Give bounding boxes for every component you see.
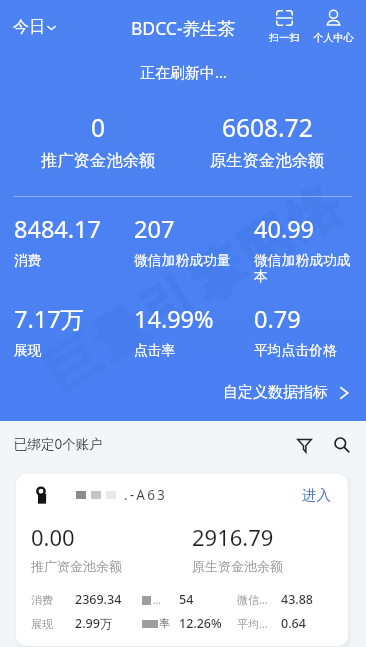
staticText: 推广资金池余额: [41, 150, 156, 171]
button[interactable]: 扫一扫: [265, 10, 304, 44]
button[interactable]: 搜索: [326, 429, 356, 459]
staticText: 展现: [31, 617, 53, 631]
staticText: 43.88: [281, 591, 314, 608]
staticText: 2369.34: [75, 591, 122, 608]
button[interactable]: 自定义数据指标: [223, 383, 352, 402]
staticText: 平均点击价格: [254, 342, 337, 359]
staticText: 2916.79: [192, 522, 274, 552]
staticText: 巨量引擎网络: [30, 170, 355, 408]
staticText: 原生资金池余额: [210, 150, 325, 171]
staticText: 6608.72: [222, 111, 313, 144]
staticText: 微信…: [237, 592, 268, 607]
staticText: 自定义数据指标: [223, 383, 328, 402]
staticText: 54: [179, 591, 194, 608]
staticText: 消费: [14, 252, 42, 269]
staticText: 12.26%: [179, 615, 222, 632]
staticText: 扫一扫: [269, 31, 300, 44]
staticText: 率: [159, 617, 170, 630]
button[interactable]: 个人中心: [309, 10, 358, 44]
button[interactable]: 进入: [302, 486, 348, 504]
staticText: 微信加粉成功量: [134, 252, 231, 269]
staticText: 0.79: [254, 303, 301, 335]
button[interactable]: 筛选: [289, 429, 319, 459]
staticText: .-A63: [124, 486, 168, 504]
staticText: 点击率: [134, 342, 176, 359]
staticText: BDCC-养生茶: [131, 16, 236, 40]
staticText: 40.99: [254, 213, 315, 245]
staticText: 0: [91, 111, 106, 144]
staticText: 已绑定0个账户: [14, 435, 103, 453]
staticText: 7.17万: [14, 303, 85, 335]
staticText: 14.99%: [134, 303, 214, 335]
button[interactable]: 今日: [13, 17, 57, 37]
staticText: 0.00: [31, 522, 75, 552]
staticText: 个人中心: [313, 31, 354, 44]
staticText: 展现: [14, 342, 42, 359]
staticText: 推广资金池余额: [31, 558, 122, 574]
staticText: 8484.17: [14, 213, 101, 245]
staticText: 207: [134, 213, 175, 245]
staticText: 正在刷新中…: [140, 62, 227, 82]
staticText: 今日: [13, 17, 45, 37]
staticText: 消费: [31, 593, 53, 607]
staticText: 平均…: [237, 616, 268, 631]
button[interactable]: .-A63: [16, 474, 348, 646]
staticText: 0.64: [281, 615, 306, 632]
staticText: …: [153, 593, 161, 607]
staticText: 原生资金池余额: [192, 558, 283, 574]
staticText: 微信加粉成功成本: [254, 252, 358, 285]
staticText: 2.99万: [75, 615, 113, 632]
